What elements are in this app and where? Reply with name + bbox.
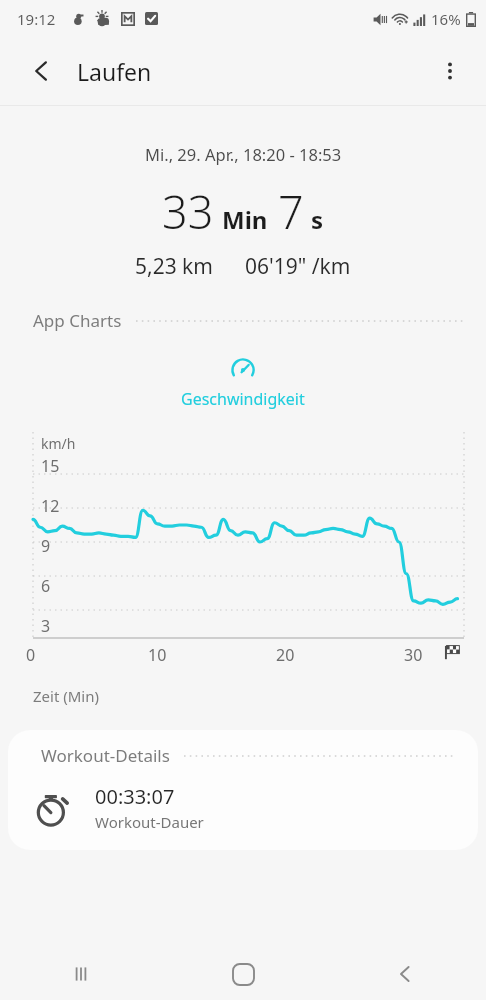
staticText: 30 <box>404 644 423 666</box>
staticText: Laufen <box>77 56 152 87</box>
staticText: 19:12 <box>17 9 56 29</box>
button[interactable]: Geschwindigkeit <box>0 356 486 410</box>
button[interactable]: 00:33:07 <box>8 783 478 850</box>
button[interactable]: Recents <box>0 948 162 1000</box>
staticText: km/h <box>41 434 76 453</box>
staticText: Min <box>222 203 268 236</box>
staticText: 6 <box>41 575 51 597</box>
staticText: 3 <box>41 615 51 637</box>
staticText: 20 <box>276 644 295 666</box>
staticText: 00:33:07 <box>95 783 175 810</box>
staticText: Zeit (Min) <box>33 686 99 706</box>
other: Geschwindigkeit <box>229 356 257 384</box>
staticText: 12 <box>41 495 60 517</box>
staticText: 15 <box>41 455 60 477</box>
staticText: 06'19" /km <box>245 252 351 281</box>
staticText: 10 <box>148 644 167 666</box>
staticText: App Charts <box>33 309 122 332</box>
staticText: 9 <box>41 535 51 557</box>
staticText: s <box>311 203 324 236</box>
staticText: 7 <box>278 181 304 242</box>
button[interactable]: More options <box>426 47 474 95</box>
staticText: 5,23 km <box>135 252 213 281</box>
button[interactable]: Home <box>162 948 324 1000</box>
staticText: 0 <box>26 644 36 666</box>
other: Finish <box>444 644 460 660</box>
staticText: Workout-Details <box>41 744 170 767</box>
staticText: 16% <box>431 9 461 29</box>
staticText: Geschwindigkeit <box>181 388 305 410</box>
staticText: Workout-Dauer <box>95 812 204 832</box>
staticText: Mi., 29. Apr., 18:20 - 18:53 <box>145 143 342 165</box>
button[interactable]: Back <box>18 47 66 95</box>
staticText: 33 <box>162 181 214 242</box>
button[interactable]: Back <box>324 948 486 1000</box>
